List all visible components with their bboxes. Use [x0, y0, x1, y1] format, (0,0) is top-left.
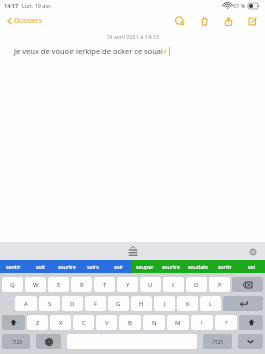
button[interactable]: New note: [245, 14, 259, 28]
button[interactable]: D: [62, 296, 83, 311]
staticText: K: [186, 300, 190, 308]
button[interactable]: .?123: [203, 334, 232, 349]
button[interactable]: Keyboard settings: [246, 245, 259, 258]
staticText: sortir: [218, 263, 232, 270]
button[interactable]: X: [50, 315, 71, 330]
button[interactable]: U: [140, 277, 161, 292]
button[interactable]: R: [71, 277, 92, 292]
staticText: 51 %: [233, 2, 246, 9]
button[interactable]: M: [167, 315, 189, 330]
staticText: V: [105, 319, 109, 327]
staticText: Y: [126, 281, 130, 289]
button[interactable]: Return: [223, 296, 263, 311]
button[interactable]: Backspace: [232, 277, 263, 292]
staticText: I: [172, 281, 175, 289]
staticText: Z: [36, 319, 40, 327]
button[interactable]: K: [177, 296, 198, 311]
staticText: soudain: [188, 263, 208, 270]
staticText: W: [33, 281, 39, 289]
staticText: !: [201, 319, 203, 327]
button[interactable]: S: [39, 296, 60, 311]
staticText: O: [194, 281, 199, 289]
staticText: E: [57, 281, 61, 289]
button[interactable]: H: [131, 296, 152, 311]
staticText: .?123: [212, 339, 223, 345]
button[interactable]: Markup: [173, 14, 187, 28]
button[interactable]: O: [186, 277, 207, 292]
staticText: J: [164, 300, 166, 308]
button[interactable]: Z: [27, 315, 48, 330]
staticText: soir: [114, 263, 124, 270]
button[interactable]: sourire: [158, 260, 184, 273]
staticText: L: [209, 300, 213, 308]
staticText: D: [70, 300, 75, 308]
staticText: A: [24, 300, 28, 308]
staticText: soirs: [87, 263, 99, 270]
button[interactable]: Y: [117, 277, 138, 292]
staticText: F: [94, 300, 98, 308]
button[interactable]: Delete: [197, 14, 211, 28]
button[interactable]: E: [48, 277, 69, 292]
staticText: H: [139, 300, 144, 308]
staticText: soit: [36, 263, 46, 270]
button[interactable]: soir: [106, 260, 132, 273]
other: Return: [223, 296, 263, 311]
button[interactable]: ?: [215, 315, 237, 330]
staticText: M: [175, 319, 181, 327]
button[interactable]: W: [25, 277, 46, 292]
staticText: Lun. 19 avr.: [22, 2, 52, 9]
staticText: soi: [248, 263, 256, 270]
other: Shift: [239, 315, 263, 330]
button[interactable]: Shift: [2, 315, 25, 330]
button[interactable]: Shift: [239, 315, 263, 330]
staticText: r: [164, 46, 168, 56]
button[interactable]: B: [119, 315, 141, 330]
button[interactable]: T: [94, 277, 115, 292]
button[interactable]: N: [143, 315, 165, 330]
button[interactable]: Dossiers: [5, 14, 45, 28]
button[interactable]: L: [200, 296, 221, 311]
staticText: B: [128, 319, 132, 327]
button[interactable]: P: [209, 277, 230, 292]
button[interactable]: J: [154, 296, 175, 311]
staticText: 19 avril 2021 à 14:13: [0, 33, 265, 40]
staticText: sourire: [162, 263, 180, 270]
staticText: Q: [10, 281, 15, 289]
button[interactable]: sortir: [211, 260, 238, 273]
staticText: U: [148, 281, 153, 289]
staticText: sourire: [58, 263, 76, 270]
button[interactable]: I: [163, 277, 184, 292]
staticText: .?123: [11, 339, 22, 345]
other: Change keyboard: [36, 334, 61, 349]
button[interactable]: G: [108, 296, 129, 311]
staticText: S: [48, 300, 52, 308]
staticText: R: [80, 281, 84, 289]
button[interactable]: souper: [132, 260, 158, 273]
button[interactable]: F: [85, 296, 106, 311]
staticText: ?: [225, 319, 228, 327]
button[interactable]: soit: [27, 260, 54, 273]
button[interactable]: sentir: [0, 260, 27, 273]
staticText: souper: [136, 263, 154, 270]
button[interactable]: soudain: [184, 260, 211, 273]
staticText: P: [218, 281, 222, 289]
other: Hide keyboard: [238, 334, 263, 349]
button[interactable]: Share: [221, 14, 235, 28]
other: Shift: [2, 315, 25, 330]
staticText: 14:17: [4, 2, 19, 9]
button[interactable]: !: [191, 315, 213, 330]
button[interactable]: Hide keyboard: [238, 334, 263, 349]
button[interactable]: soirs: [80, 260, 106, 273]
button[interactable]: C: [73, 315, 94, 330]
staticText: Je veux de vouoir lerkipe de ocker ce so…: [14, 46, 164, 56]
staticText: G: [116, 300, 121, 308]
other: Backspace: [232, 277, 263, 292]
button[interactable]: soi: [238, 260, 265, 273]
button[interactable]: A: [15, 296, 37, 311]
button[interactable]: .?123: [2, 334, 30, 349]
button[interactable]: Q: [2, 277, 23, 292]
button[interactable]: V: [96, 315, 117, 330]
button[interactable]: sourire: [54, 260, 80, 273]
button[interactable]: Change keyboard: [36, 334, 61, 349]
